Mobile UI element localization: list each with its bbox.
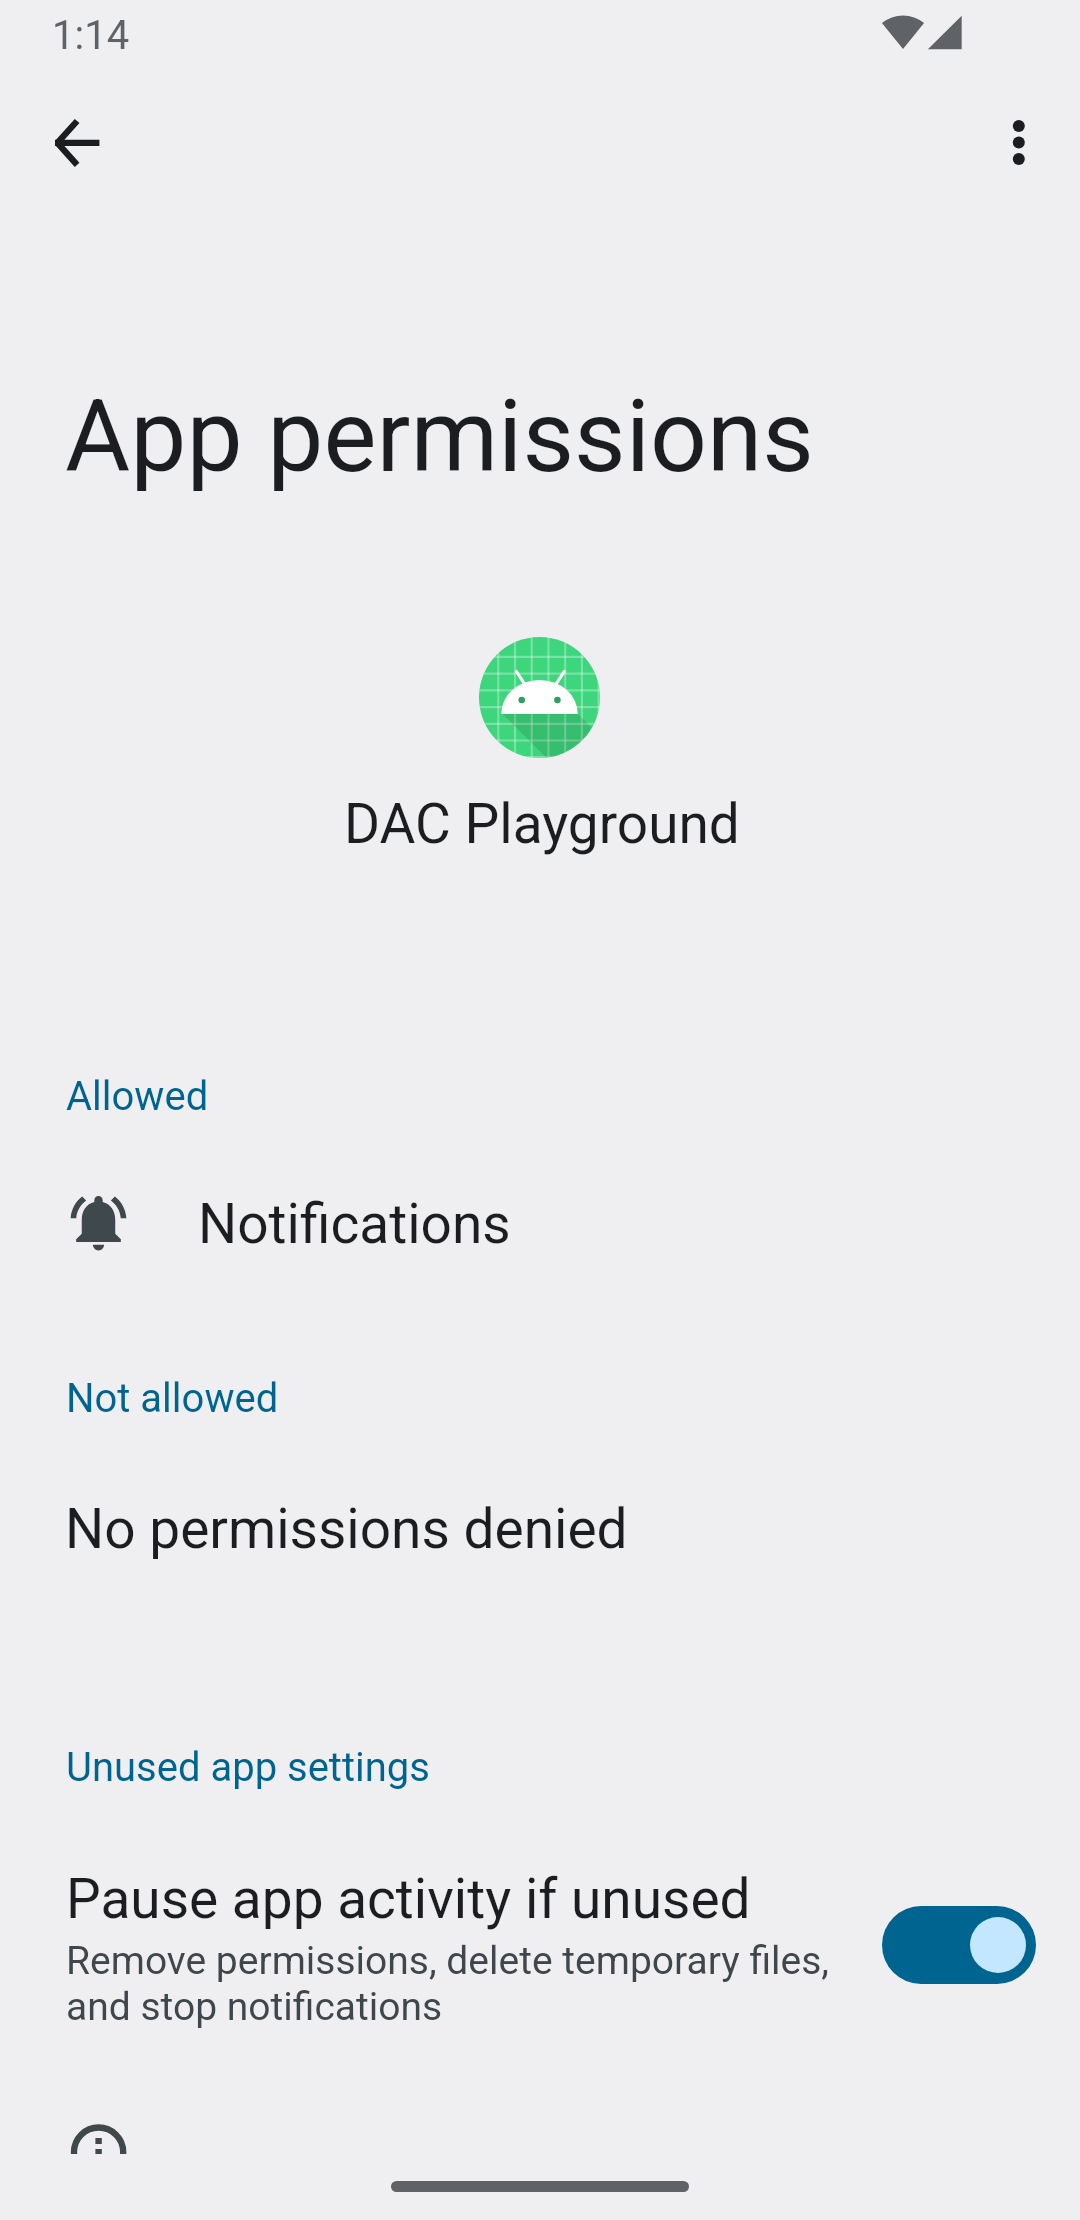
staticText: Unused app settings — [66, 1744, 430, 1791]
staticText: Notifications — [198, 1192, 511, 1256]
staticText: 1:14 — [52, 12, 130, 59]
staticText: Pause app activity if unused — [66, 1867, 751, 1931]
button[interactable]: Notifications — [0, 1178, 1080, 1270]
button[interactable]: Back — [44, 110, 110, 176]
button[interactable]: Info — [0, 2118, 1080, 2154]
staticText: Not allowed — [66, 1375, 279, 1422]
button[interactable]: Pause app activity if unused — [0, 1842, 1080, 2052]
staticText: Allowed — [66, 1073, 209, 1120]
staticText: App permissions — [65, 378, 814, 495]
staticText: Remove permissions, delete temporary fil… — [66, 1938, 866, 2029]
button[interactable]: Pause app activity if unused — [882, 1906, 1036, 1984]
staticText: DAC Playground — [344, 792, 740, 856]
button[interactable]: More options — [986, 110, 1052, 176]
staticText: No permissions denied — [65, 1497, 628, 1561]
